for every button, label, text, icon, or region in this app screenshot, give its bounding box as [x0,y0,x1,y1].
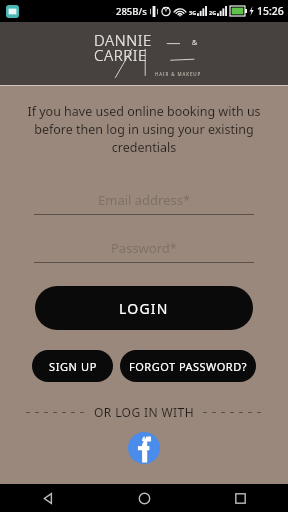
staticText: OR LOG IN WITH [94,404,194,420]
staticText: LOGIN [119,299,169,318]
button[interactable]: Home [96,484,192,512]
button[interactable]: Email address* [34,189,254,211]
staticText: FORGOT PASSWORD? [129,359,247,374]
staticText: 2G [209,9,217,16]
staticText: & [192,38,198,48]
staticText: HAIR & MAKEUP [155,71,202,77]
staticText: 15:26 [257,4,284,18]
button[interactable]: Recent apps [192,484,288,512]
button[interactable]: SIGN UP [32,350,113,382]
button[interactable]: Log in with Facebook [128,432,160,464]
staticText: If you have used online booking with us … [14,103,274,156]
staticText: Email address* [98,191,191,209]
staticText: Password* [111,239,177,257]
staticText: 3G [189,9,197,16]
staticText: DANNIE [94,30,152,50]
staticText: 285B/s [116,5,147,18]
button[interactable]: FORGOT PASSWORD? [120,350,256,382]
button[interactable]: LOGIN [35,286,253,330]
staticText: CARRIE [94,45,147,65]
button[interactable]: Back [0,484,96,512]
button[interactable]: Password* [34,237,254,259]
staticText: SIGN UP [49,359,97,374]
